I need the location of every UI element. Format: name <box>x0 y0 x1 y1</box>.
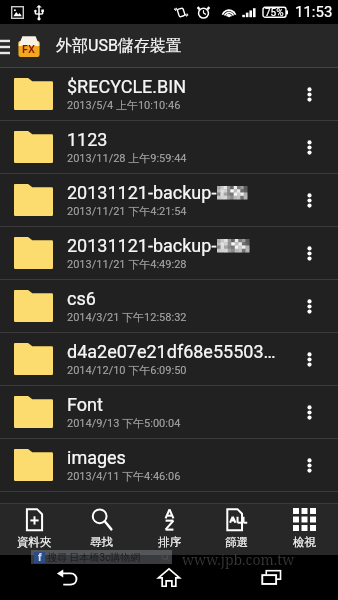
button[interactable]: More options <box>280 439 338 491</box>
button[interactable]: Back <box>32 555 102 600</box>
staticText: 外部USB儲存裝置 <box>56 36 182 56</box>
staticText: Font <box>67 394 103 415</box>
button[interactable]: 20131121-backup- <box>0 174 338 227</box>
button[interactable]: 篩選 <box>203 504 270 555</box>
button[interactable]: 資料夾 <box>1 504 68 555</box>
button[interactable]: More options <box>280 174 338 226</box>
staticText: 資料夾 <box>17 535 52 549</box>
staticText: cs6 <box>67 288 96 309</box>
staticText: 1123 <box>67 129 108 150</box>
staticText: 2013/11/28 上午9:59:44 <box>67 151 187 165</box>
button[interactable]: More options <box>280 280 338 332</box>
button[interactable]: More options <box>280 121 338 173</box>
staticText: 2013/5/4 上午10:10:46 <box>67 98 181 112</box>
staticText: 篩選 <box>225 535 248 549</box>
staticText: 20131121-backup- <box>67 235 217 256</box>
staticText: 20131121-backup- <box>67 182 217 203</box>
staticText: 2013/11/21 下午4:21:54 <box>67 204 187 218</box>
button[interactable]: 1123 <box>0 121 338 174</box>
staticText: 11:53 <box>295 3 333 21</box>
button[interactable]: 檢視 <box>271 504 338 555</box>
button[interactable]: $RECYCLE.BIN <box>0 68 338 121</box>
staticText: 尋找 <box>90 535 113 549</box>
button[interactable]: d4a2e07e21df68e5550336999999 <box>0 333 338 386</box>
button[interactable]: 尋找 <box>68 504 135 555</box>
button[interactable]: More options <box>280 386 338 438</box>
button[interactable]: 排序 <box>136 504 203 555</box>
button[interactable]: Home <box>134 555 204 600</box>
staticText: 搜尋 日本橋3c購物網 <box>47 551 141 564</box>
staticText: 排序 <box>158 535 181 549</box>
staticText: 2014/9/13 下午5:00:04 <box>67 416 181 430</box>
button[interactable]: More options <box>280 68 338 120</box>
button[interactable]: More options <box>280 333 338 385</box>
button[interactable]: More options <box>280 227 338 279</box>
button[interactable]: 20131121-backup- <box>0 227 338 280</box>
staticText: 檢視 <box>293 535 316 549</box>
button[interactable]: Menu <box>0 24 17 67</box>
button[interactable]: images <box>0 439 338 492</box>
button[interactable]: Font <box>0 386 338 439</box>
staticText: 2013/4/11 下午4:46:06 <box>67 469 181 483</box>
staticText: f <box>38 552 42 563</box>
staticText: d4a2e07e21df68e5550336999999 <box>67 341 280 362</box>
staticText: 2014/3/21 下午12:58:32 <box>67 310 187 324</box>
staticText: 2014/12/10 下午6:09:50 <box>67 363 187 377</box>
staticText: $RECYCLE.BIN <box>67 76 187 97</box>
staticText: 2013/11/21 下午4:49:28 <box>67 257 187 271</box>
staticText: 75% <box>265 7 284 19</box>
staticText: www.jpb.com.tw <box>182 550 295 569</box>
staticText: FX <box>22 43 36 56</box>
button[interactable]: Recents <box>236 555 306 600</box>
button[interactable]: cs6 <box>0 280 338 333</box>
staticText: images <box>67 447 126 468</box>
